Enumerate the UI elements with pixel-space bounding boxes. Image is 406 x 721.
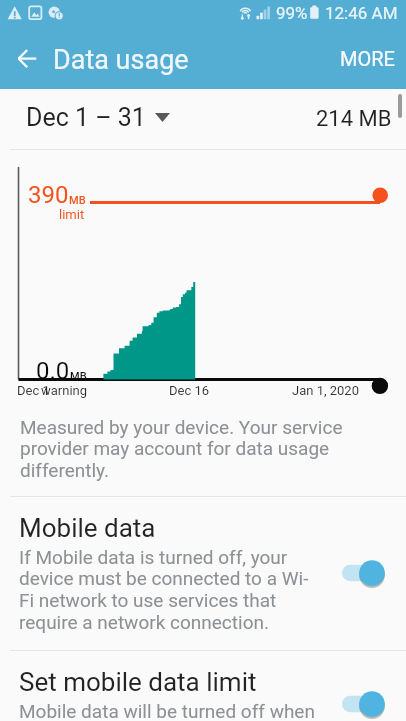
- staticText: Data usage: [53, 44, 189, 76]
- staticText: 214 MB: [316, 106, 392, 132]
- staticText: limit: [59, 207, 85, 222]
- staticText: 0.0: [36, 357, 70, 385]
- staticText: 12:46 AM: [325, 3, 398, 23]
- staticText: Dec 1: [17, 383, 50, 398]
- staticText: Dec 1 – 31: [26, 103, 146, 132]
- staticText: Measured by your device. Your service pr…: [20, 416, 350, 482]
- staticText: 99%: [276, 3, 308, 23]
- staticText: 390: [28, 181, 69, 209]
- staticText: MB: [69, 194, 86, 207]
- staticText: MORE: [340, 47, 395, 70]
- staticText: warning: [41, 383, 88, 398]
- button[interactable]: Dec 1 – 31: [0, 89, 406, 149]
- staticText: Mobile data will be turned off when: [19, 700, 349, 721]
- button[interactable]: Mobile data: [0, 496, 406, 650]
- staticText: Mobile data: [19, 513, 156, 543]
- button[interactable]: Back: [7, 39, 46, 78]
- staticText: Jan 1, 2020: [292, 383, 359, 398]
- button[interactable]: Set mobile data limit: [0, 650, 406, 721]
- button[interactable]: MORE: [326, 37, 406, 80]
- staticText: Dec 16: [169, 383, 210, 398]
- staticText: Set mobile data limit: [19, 667, 257, 697]
- staticText: MB: [70, 370, 87, 383]
- button[interactable]: Toggle: [342, 689, 388, 719]
- button[interactable]: Toggle: [342, 558, 388, 588]
- staticText: If Mobile data is turned off, your devic…: [19, 546, 311, 634]
